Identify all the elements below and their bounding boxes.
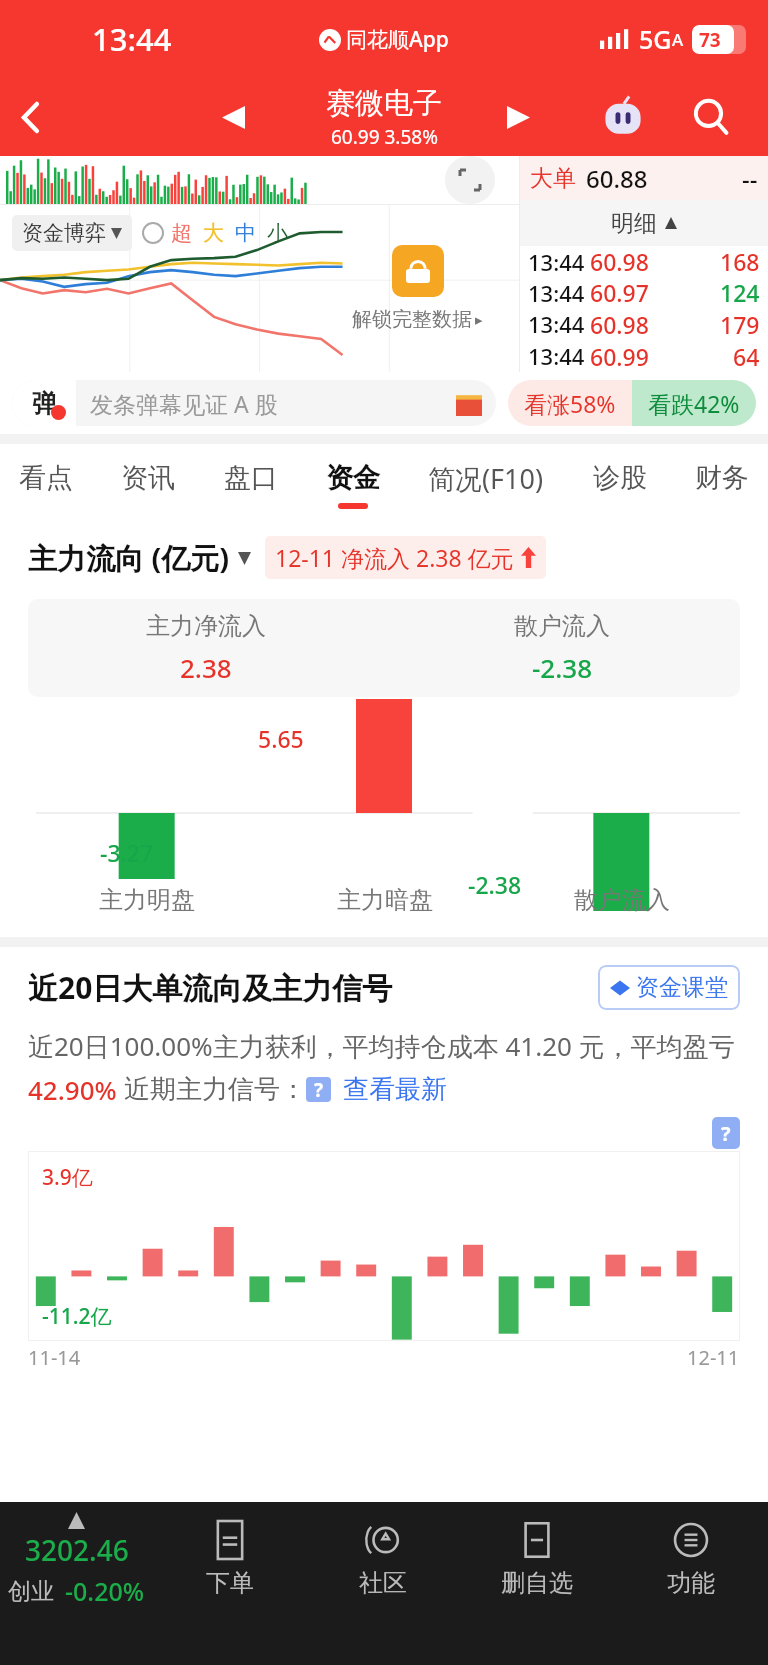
staticText: 64 — [733, 341, 760, 372]
staticText: 简况(F10) — [428, 460, 544, 497]
button[interactable]: 查看最新 — [343, 1073, 447, 1106]
staticText: 13:44 — [528, 247, 585, 277]
staticText: 诊股 — [593, 461, 647, 495]
staticText: 下单 — [206, 1568, 254, 1598]
button[interactable]: Back — [0, 86, 62, 148]
staticText: 近20日大单流向及主力信号 — [28, 967, 393, 1008]
staticText: 12-11 — [687, 1344, 740, 1371]
staticText: 60.99 3.58% — [331, 124, 438, 150]
staticText: 主力流向 (亿元) — [28, 538, 230, 578]
staticText: 资讯 — [121, 461, 175, 495]
staticText: 资金 — [326, 461, 380, 495]
button[interactable]: Fullscreen — [445, 156, 495, 204]
button[interactable]: 看跌42% — [632, 380, 756, 426]
button[interactable]: 看涨58% — [508, 380, 632, 426]
button[interactable]: Help — [306, 1077, 331, 1102]
staticText: 124 — [720, 277, 760, 308]
staticText: 60.98 — [590, 309, 649, 340]
button[interactable]: 删自选 — [460, 1521, 614, 1598]
button[interactable]: 12-11 净流入 2.38 亿元 — [265, 536, 546, 579]
staticText: 42.90% — [28, 1072, 117, 1107]
button[interactable]: Search — [682, 88, 740, 146]
staticText: 5.65 — [258, 723, 304, 754]
staticText: -2.38 — [468, 869, 522, 900]
staticText: 看跌42% — [648, 388, 740, 419]
staticText: 近期主力信号： — [124, 1073, 306, 1106]
staticText: 5G — [639, 22, 672, 56]
button[interactable]: 明细 — [520, 200, 768, 246]
staticText: 60.97 — [590, 277, 649, 308]
button[interactable]: 下单 — [153, 1521, 306, 1598]
staticText: ▸ — [475, 311, 483, 328]
staticText: 盘口 — [224, 461, 278, 495]
button[interactable]: 资讯 — [118, 455, 178, 515]
staticText: 明细 — [611, 209, 657, 238]
button[interactable]: Chart help — [712, 1117, 740, 1149]
button[interactable]: 社区 — [306, 1521, 460, 1598]
staticText: 13:44 — [528, 278, 585, 308]
staticText: -3.27 — [100, 837, 154, 868]
staticText: 179 — [720, 309, 760, 340]
staticText: 60.98 — [590, 246, 649, 277]
staticText: 资金课堂 — [636, 973, 728, 1002]
staticText: 2.38 — [180, 650, 232, 685]
staticText: 13:44 — [528, 341, 585, 371]
staticText: 近20日100.00%主力获利，平均持仓成本 41.20 元，平均盈亏 — [28, 1028, 735, 1064]
button[interactable]: 资金 — [323, 455, 383, 515]
staticText: 解锁完整数据 — [352, 307, 472, 332]
staticText: ? — [314, 1077, 324, 1102]
staticText: -11.2亿 — [42, 1302, 112, 1331]
staticText: 发条弹幕见证 A 股 — [90, 388, 278, 419]
staticText: 168 — [720, 246, 760, 277]
staticText: 大 — [203, 220, 224, 246]
button[interactable]: 弹 — [12, 380, 496, 426]
button[interactable]: Next stock — [490, 89, 546, 145]
button[interactable]: 简况(F10) — [425, 454, 547, 517]
staticText: 主力明盘 — [99, 885, 195, 915]
staticText: 赛微电子 — [326, 85, 442, 122]
button[interactable]: 功能 — [614, 1521, 768, 1598]
button[interactable]: 资金课堂 — [598, 965, 740, 1010]
button[interactable]: 3202.46 — [0, 1512, 153, 1608]
staticText: -- — [742, 162, 758, 195]
staticText: 删自选 — [501, 1568, 573, 1598]
staticText: 主力暗盘 — [337, 885, 433, 915]
staticText: 看点 — [19, 461, 73, 495]
staticText: 小 — [267, 220, 288, 246]
staticText: 13:44 — [92, 18, 172, 60]
staticText: -0.20% — [65, 1574, 145, 1608]
staticText: 主力净流入 — [146, 611, 266, 641]
staticText: 资金博弈 — [22, 220, 106, 246]
staticText: 超 — [171, 220, 192, 246]
staticText: 大单 — [530, 164, 576, 193]
staticText: 13:44 — [528, 309, 585, 339]
button[interactable]: Unlock data — [392, 245, 444, 297]
button[interactable]: 财务 — [692, 455, 752, 515]
button[interactable]: AI assistant — [594, 88, 652, 146]
staticText: 弹 — [32, 388, 57, 419]
staticText: 散户流入 — [514, 611, 610, 641]
staticText: 3202.46 — [25, 1531, 129, 1569]
staticText: 12-11 净流入 2.38 亿元 — [275, 542, 514, 573]
staticText: 60.99 — [590, 341, 649, 372]
staticText: 73 — [699, 27, 721, 53]
button[interactable]: 看点 — [16, 455, 76, 515]
button[interactable]: 资金博弈 — [12, 215, 132, 251]
staticText: ? — [721, 1120, 731, 1147]
staticText: 社区 — [359, 1568, 407, 1598]
staticText: 财务 — [695, 461, 749, 495]
staticText: 同花顺App — [346, 25, 449, 54]
button[interactable]: 主力流向 (亿元) — [28, 538, 251, 578]
staticText: -2.38 — [532, 650, 593, 685]
staticText: 3.9亿 — [42, 1163, 93, 1192]
button[interactable]: 盘口 — [221, 455, 281, 515]
button[interactable]: Previous stock — [205, 89, 261, 145]
staticText: 60.88 — [586, 162, 648, 195]
staticText: 看涨58% — [524, 388, 616, 419]
staticText: 中 — [235, 220, 256, 246]
staticText: A — [672, 28, 684, 51]
staticText: 散户流入 — [574, 885, 670, 915]
staticText: 创业 — [8, 1577, 54, 1606]
staticText: 功能 — [667, 1568, 715, 1598]
button[interactable]: 诊股 — [590, 455, 650, 515]
